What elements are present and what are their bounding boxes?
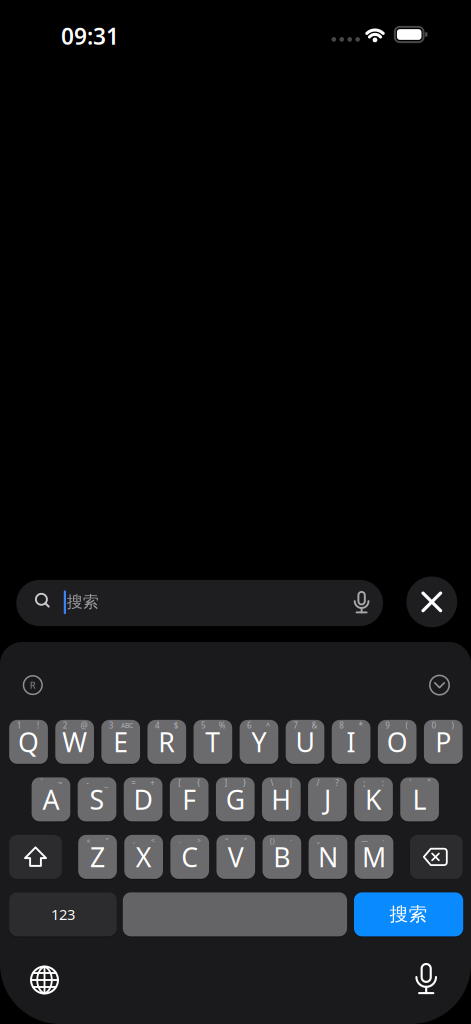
- button[interactable]: 搜索: [354, 892, 463, 936]
- staticText: E: [113, 724, 128, 760]
- button[interactable]: X: [124, 835, 163, 879]
- button[interactable]: R: [147, 720, 186, 764]
- button[interactable]: A: [32, 777, 70, 821]
- button[interactable]: 听写: [411, 962, 441, 995]
- staticText: 4: [155, 720, 160, 731]
- staticText: 搜索: [390, 903, 428, 926]
- button[interactable]: K: [354, 777, 393, 821]
- staticText: >: [197, 836, 201, 845]
- staticText: \: [270, 778, 273, 788]
- staticText: ?: [335, 778, 338, 788]
- button[interactable]: Z: [78, 835, 117, 879]
- staticText: _: [104, 778, 108, 788]
- button[interactable]: D: [124, 777, 162, 821]
- staticText: @: [80, 720, 87, 731]
- staticText: H: [271, 782, 291, 817]
- staticText: `: [41, 778, 43, 788]
- button[interactable]: 删除: [410, 835, 463, 879]
- staticText: 5: [201, 720, 206, 731]
- staticText: F: [182, 782, 196, 817]
- staticText: V: [228, 839, 244, 875]
- staticText: 2: [63, 720, 68, 731]
- staticText: ABC: [121, 721, 133, 730]
- button[interactable]: Q: [9, 720, 48, 764]
- staticText: .: [179, 836, 181, 845]
- button[interactable]: S: [78, 777, 116, 821]
- button[interactable]: Shift: [9, 835, 62, 879]
- staticText: !: [37, 720, 39, 731]
- button[interactable]: 下一个键盘: [29, 965, 59, 995]
- staticText: ·: [382, 836, 384, 845]
- button[interactable]: Y: [240, 720, 278, 764]
- staticText: 6: [247, 720, 252, 731]
- button[interactable]: 收起键盘: [427, 673, 452, 698]
- button[interactable]: P: [424, 720, 463, 764]
- staticText: 9: [385, 720, 390, 731]
- staticText: 09:31: [61, 21, 119, 51]
- staticText: [: [178, 778, 181, 788]
- staticText: L: [413, 782, 427, 817]
- staticText: |: [289, 778, 293, 788]
- staticText: S: [89, 782, 104, 817]
- staticText: <: [151, 836, 155, 845]
- staticText: *: [358, 720, 362, 731]
- button[interactable]: I: [332, 720, 370, 764]
- button[interactable]: U: [286, 720, 324, 764]
- staticText: +: [150, 778, 155, 788]
- staticText: R: [158, 724, 175, 760]
- button[interactable]: O: [378, 720, 416, 764]
- staticText: U: [295, 724, 314, 760]
- staticText: R: [30, 679, 36, 691]
- staticText: A: [42, 782, 59, 817]
- staticText: ,: [133, 836, 135, 845]
- button[interactable]: N: [309, 835, 347, 879]
- staticText: “: [225, 836, 227, 845]
- staticText: G: [226, 782, 245, 817]
- staticText: ;: [363, 778, 365, 788]
- button[interactable]: G: [216, 777, 255, 821]
- button[interactable]: V: [216, 835, 255, 879]
- staticText: Y: [251, 724, 266, 760]
- staticText: =: [131, 778, 136, 788]
- staticText: C: [181, 839, 198, 875]
- button[interactable]: M: [355, 835, 393, 879]
- button[interactable]: 关闭: [406, 576, 457, 627]
- staticText: D: [134, 782, 153, 817]
- staticText: ): [452, 720, 454, 731]
- button[interactable]: 搜索: [16, 580, 383, 626]
- staticText: /: [317, 778, 320, 788]
- staticText: ~: [58, 778, 63, 788]
- button[interactable]: C: [170, 835, 209, 879]
- button[interactable]: B: [262, 835, 301, 879]
- button[interactable]: J: [308, 777, 347, 821]
- button[interactable]: H: [262, 777, 301, 821]
- staticText: 123: [51, 905, 75, 924]
- staticText: {: [197, 778, 200, 788]
- staticText: B: [273, 839, 290, 875]
- staticText: N: [318, 839, 338, 875]
- staticText: ”: [106, 836, 108, 845]
- button[interactable]: 空格: [123, 892, 347, 936]
- staticText: }: [243, 778, 246, 788]
- staticText: —: [361, 836, 368, 845]
- staticText: 3: [109, 720, 114, 731]
- staticText: I: [347, 724, 356, 760]
- staticText: -: [86, 778, 89, 788]
- button[interactable]: W: [55, 720, 94, 764]
- staticText: 8: [339, 720, 344, 731]
- staticText: 1: [17, 720, 22, 731]
- button[interactable]: 123: [9, 892, 117, 936]
- staticText: (: [405, 720, 407, 731]
- staticText: ': [409, 778, 411, 788]
- staticText: ]: [224, 778, 227, 788]
- staticText: 7: [293, 720, 298, 731]
- staticText: M: [362, 839, 386, 875]
- staticText: 搜索: [67, 592, 99, 612]
- staticText: &: [311, 720, 317, 731]
- button[interactable]: T: [193, 720, 232, 764]
- button[interactable]: E: [101, 720, 140, 764]
- staticText: O: [387, 724, 408, 760]
- button[interactable]: L: [400, 777, 439, 821]
- staticText: 0: [431, 720, 436, 731]
- button[interactable]: F: [170, 777, 208, 821]
